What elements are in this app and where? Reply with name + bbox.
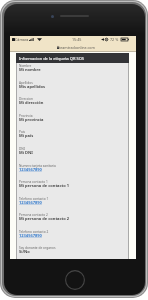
button[interactable]: Informacion de la etiqueta QR SOS bbox=[16, 53, 129, 63]
button[interactable]: Apellidos bbox=[19, 81, 127, 98]
staticText: teamtrackonline.com bbox=[59, 45, 95, 50]
staticText: Soy donante de organos bbox=[19, 246, 56, 250]
button[interactable]: Numero tarjeta sanitaria bbox=[19, 164, 127, 181]
button[interactable]: Telefono contacto 1 bbox=[19, 197, 127, 214]
staticText: Apellidos bbox=[19, 81, 33, 85]
button[interactable]: Barra de direcciones bbox=[10, 43, 136, 51]
staticText: Mi persona de contacto 2 bbox=[19, 216, 70, 221]
button[interactable]: Telefono contacto 2 bbox=[19, 230, 127, 247]
staticText: 72 % bbox=[110, 37, 119, 42]
button[interactable]: Persona contacto 2 bbox=[19, 213, 127, 230]
staticText: Telefono contacto 1 bbox=[19, 197, 49, 201]
staticText: Mi provincia bbox=[19, 117, 44, 122]
staticText: Nombre bbox=[19, 64, 32, 68]
staticText: Mi país bbox=[19, 133, 34, 138]
staticText: 1234567890 bbox=[19, 200, 42, 205]
button[interactable]: Home bbox=[65, 270, 85, 290]
staticText: Mi DNI bbox=[19, 150, 33, 155]
staticText: DNI bbox=[19, 147, 25, 151]
staticText: Persona contacto 1 bbox=[19, 180, 48, 184]
staticText: 15:45 bbox=[72, 37, 82, 42]
staticText: Persona contacto 2 bbox=[19, 213, 48, 217]
staticText: Mis apellidos bbox=[19, 84, 45, 89]
staticText: Numero tarjeta sanitaria bbox=[19, 164, 56, 168]
staticText: Direccion bbox=[19, 97, 33, 101]
button[interactable]: Soy donante de organos bbox=[19, 246, 127, 263]
staticText: Telefono contacto 2 bbox=[19, 230, 49, 234]
button[interactable]: Direccion bbox=[19, 97, 127, 114]
staticText: 1234567890 bbox=[19, 167, 42, 172]
button[interactable]: Pais bbox=[19, 130, 127, 147]
staticText: 1234567890 bbox=[19, 233, 42, 238]
button[interactable]: DNI bbox=[19, 147, 127, 164]
button[interactable]: Nombre bbox=[19, 64, 127, 81]
staticText: Cámara bbox=[15, 37, 29, 42]
staticText: Pais bbox=[19, 130, 26, 134]
button[interactable]: Provincia bbox=[19, 114, 127, 131]
staticText: Mi persona de contacto 1 bbox=[19, 183, 70, 188]
staticText: Provincia bbox=[19, 114, 33, 118]
button[interactable]: Persona contacto 1 bbox=[19, 180, 127, 197]
staticText: Mi nombre bbox=[19, 67, 41, 72]
staticText: Si/No bbox=[19, 249, 30, 254]
staticText: Informacion de la etiqueta QR SOS bbox=[19, 56, 85, 61]
button[interactable]: Volver a Cámara bbox=[12, 38, 15, 41]
staticText: Mi dirección bbox=[19, 100, 44, 105]
